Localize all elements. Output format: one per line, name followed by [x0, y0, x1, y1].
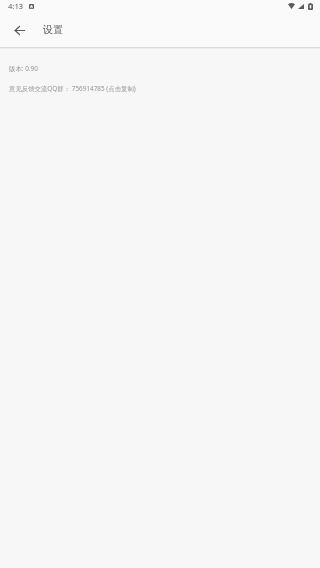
- button[interactable]: Back: [7, 18, 31, 42]
- button[interactable]: 意见反馈交流QQ群： 756914785 (点击复制): [0, 71, 320, 93]
- staticText: 意见反馈交流QQ群： 756914785 (点击复制): [9, 84, 136, 93]
- staticText: 4:13: [8, 1, 24, 11]
- staticText: 设置: [43, 23, 64, 36]
- button[interactable]: 版本: 0.90: [0, 49, 320, 71]
- staticText: 版本: 0.90: [9, 64, 38, 73]
